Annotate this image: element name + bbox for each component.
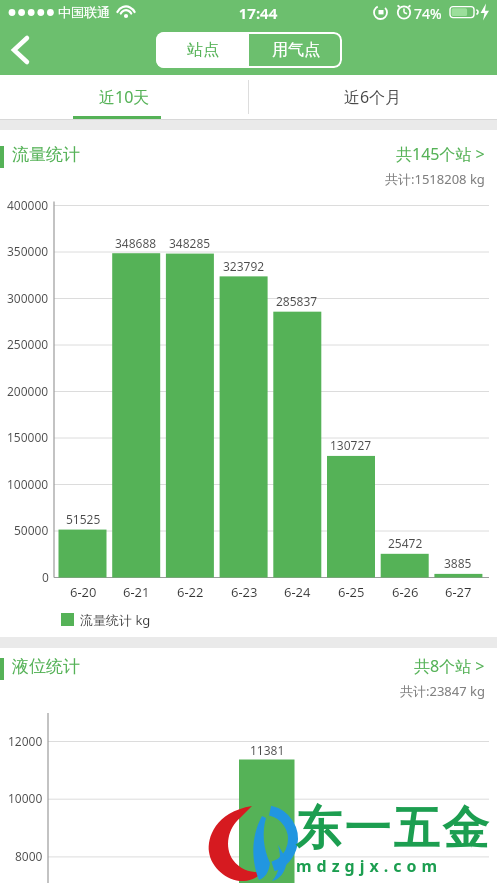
staticText: 10000 bbox=[8, 790, 43, 806]
staticText: 近10天 bbox=[99, 86, 150, 108]
staticText: 6-24 bbox=[284, 583, 311, 601]
staticText: 17:44 bbox=[228, 3, 288, 23]
staticText: 300000 bbox=[7, 290, 49, 306]
staticText: 流量统计 kg bbox=[80, 611, 151, 629]
staticText: 中国联通 bbox=[58, 4, 110, 20]
staticText: 共8个站 > bbox=[414, 655, 485, 677]
staticText: 6-26 bbox=[392, 583, 419, 601]
staticText: 6-25 bbox=[338, 583, 365, 601]
staticText: 6-27 bbox=[445, 583, 472, 601]
staticText: 东一五金 bbox=[294, 800, 490, 858]
staticText: 6-20 bbox=[70, 583, 97, 601]
staticText: 6-22 bbox=[177, 583, 204, 601]
staticText: 液位统计 bbox=[12, 656, 80, 677]
staticText: 6-23 bbox=[231, 583, 258, 601]
staticText: 12000 bbox=[8, 733, 43, 749]
staticText: 流量统计 bbox=[12, 144, 80, 165]
staticText: 8000 bbox=[15, 848, 43, 864]
staticText: 25472 bbox=[388, 535, 423, 551]
staticText: 348688 bbox=[115, 235, 157, 251]
staticText: 285837 bbox=[276, 293, 318, 309]
staticText: 74% bbox=[414, 4, 442, 23]
staticText: 站点 bbox=[187, 40, 219, 60]
staticText: 130727 bbox=[330, 437, 372, 453]
staticText: 350000 bbox=[7, 243, 49, 259]
staticText: 0 bbox=[42, 569, 49, 585]
staticText: 3885 bbox=[444, 555, 472, 571]
staticText: 323792 bbox=[223, 258, 265, 274]
staticText: 6-21 bbox=[123, 583, 150, 601]
staticText: 共145个站 > bbox=[396, 143, 485, 165]
staticText: 51525 bbox=[66, 511, 101, 527]
button[interactable]: 用气点 bbox=[249, 32, 342, 68]
button[interactable]: 共145个站 > bbox=[285, 143, 485, 165]
staticText: 共计:1518208 kg bbox=[385, 170, 485, 188]
staticText: 11381 bbox=[250, 742, 285, 758]
staticText: 200000 bbox=[7, 383, 49, 399]
staticText: 400000 bbox=[7, 197, 49, 213]
button[interactable]: 近6个月 bbox=[248, 75, 497, 119]
staticText: 近6个月 bbox=[344, 86, 402, 108]
staticText: 100000 bbox=[7, 476, 49, 492]
staticText: 共计:23847 kg bbox=[400, 682, 485, 700]
staticText: 用气点 bbox=[272, 40, 320, 60]
staticText: 150000 bbox=[7, 429, 49, 445]
button[interactable]: 站点 bbox=[156, 32, 249, 68]
staticText: mdzgjx.com bbox=[296, 855, 443, 877]
button[interactable]: 近10天 bbox=[0, 75, 248, 119]
staticText: 50000 bbox=[14, 522, 49, 538]
staticText: 250000 bbox=[7, 336, 49, 352]
staticText: 348285 bbox=[169, 235, 211, 251]
button[interactable]: 共8个站 > bbox=[285, 655, 485, 677]
